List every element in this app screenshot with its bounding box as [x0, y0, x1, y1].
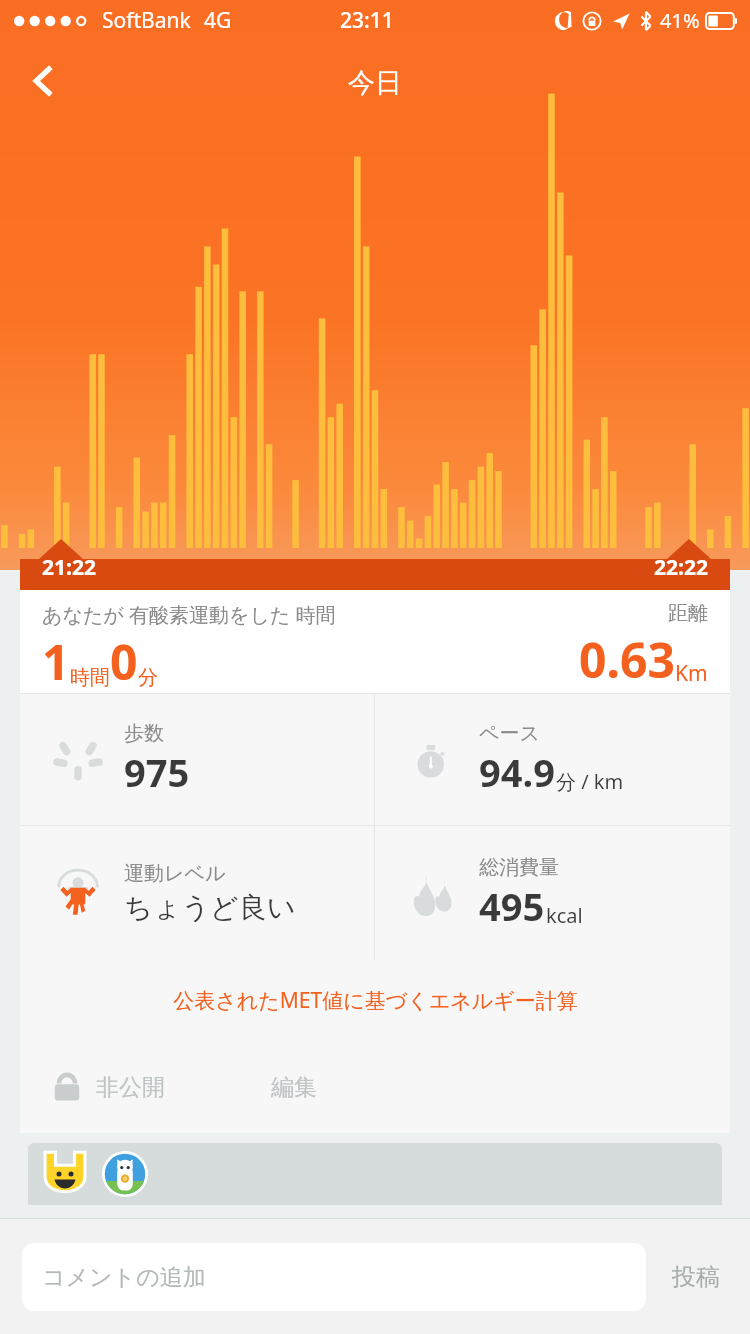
staticText: 公表されたMET値に基づくエネルギー計算 [173, 986, 578, 1015]
button[interactable]: コメントの追加 [22, 1243, 646, 1311]
button[interactable]: 公表されたMET値に基づくエネルギー計算 [20, 960, 730, 1041]
staticText: 非公開 [96, 1073, 165, 1102]
button[interactable]: ペース [375, 694, 730, 825]
button[interactable]: 編集 [265, 1067, 323, 1108]
staticText: 4G [204, 6, 232, 35]
button[interactable]: Sticker: smiley [42, 1151, 88, 1197]
staticText: 今日 [348, 66, 402, 100]
staticText: あなたが 有酸素運動をした 時間 [42, 601, 336, 628]
staticText: 0.63 [579, 627, 675, 692]
staticText: Km [675, 659, 708, 688]
staticText: 495 [479, 880, 545, 932]
staticText: SoftBank [102, 6, 191, 35]
button[interactable]: 運動レベル [20, 826, 374, 960]
staticText: コメントの追加 [42, 1263, 206, 1292]
staticText: 41% [660, 7, 700, 34]
staticText: 分 [138, 665, 158, 690]
staticText: 運動レベル [124, 861, 226, 886]
staticText: 編集 [271, 1073, 317, 1102]
button[interactable]: Back [14, 52, 72, 110]
staticText: 22:22 [654, 553, 708, 582]
button[interactable]: 総消費量 [375, 826, 730, 960]
staticText: 総消費量 [479, 855, 559, 880]
staticText: 0 [110, 629, 138, 694]
staticText: 分 / km [556, 768, 624, 795]
staticText: kcal [546, 902, 583, 929]
button[interactable]: 投稿 [646, 1252, 728, 1302]
button[interactable]: 非公開 [50, 1070, 165, 1104]
staticText: 21:22 [42, 553, 96, 582]
staticText: 23:11 [340, 6, 394, 35]
staticText: 975 [124, 746, 190, 798]
button[interactable]: 歩数 [20, 694, 374, 825]
staticText: 歩数 [124, 721, 164, 746]
staticText: 投稿 [672, 1262, 720, 1292]
staticText: 時間 [70, 665, 110, 690]
staticText: 1 [42, 629, 70, 694]
staticText: 94.9 [479, 746, 555, 798]
staticText: ちょうど良い [124, 890, 296, 925]
staticText: 距離 [668, 601, 708, 626]
button[interactable]: Sticker: cat [102, 1151, 148, 1197]
staticText: ペース [479, 721, 540, 746]
